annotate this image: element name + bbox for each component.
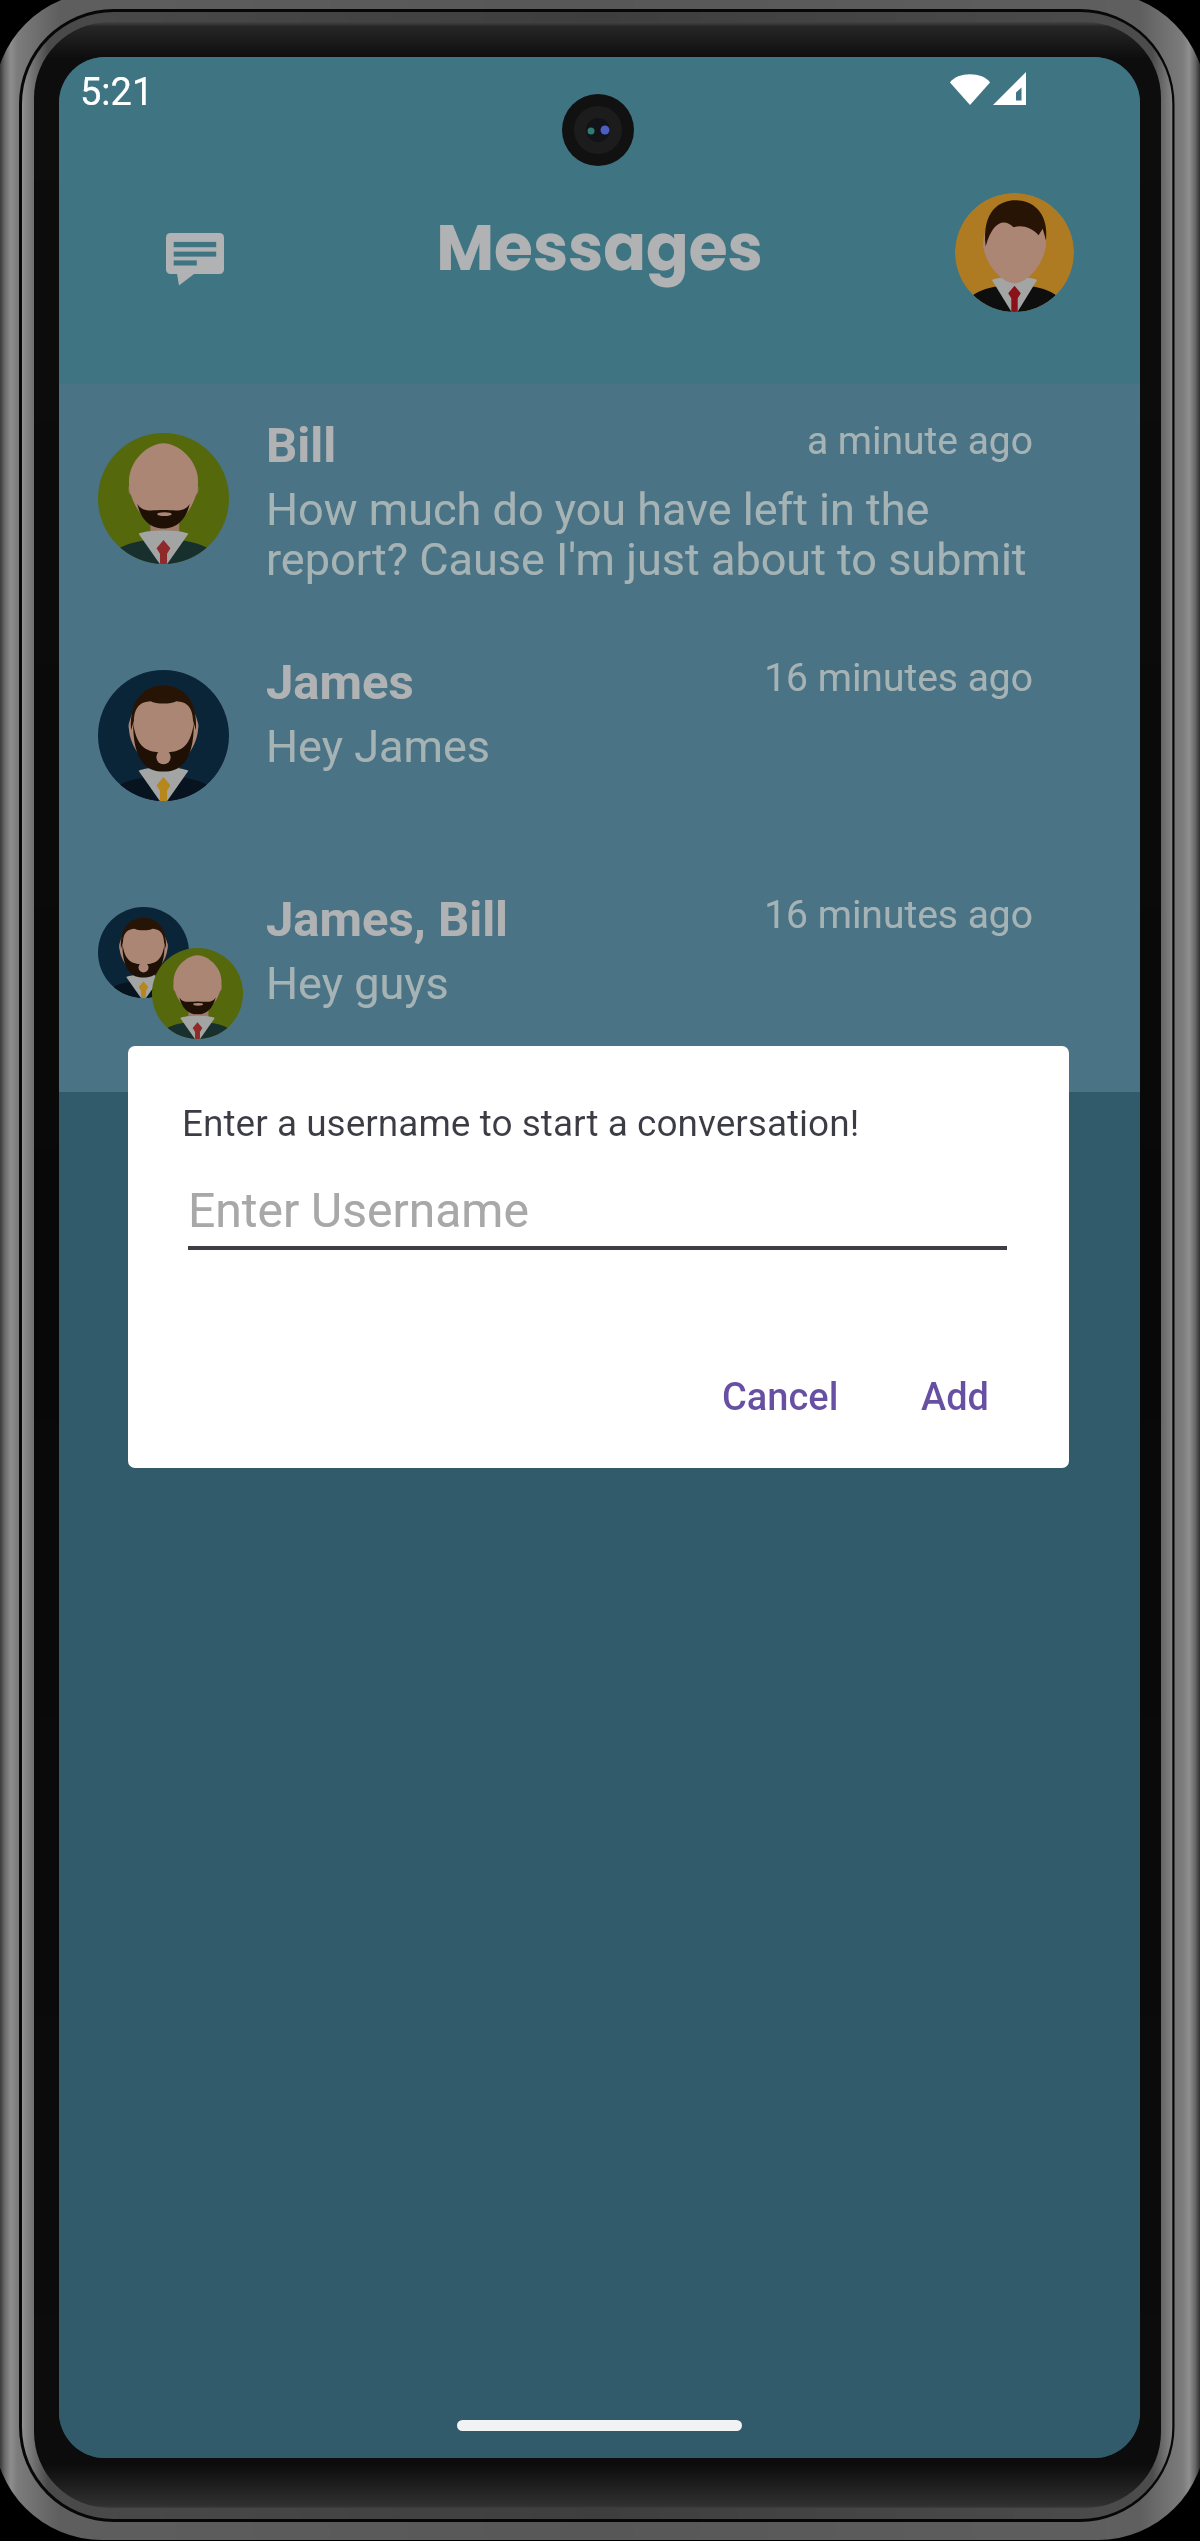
button[interactable]: Bill	[59, 384, 1140, 621]
staticText: Messages	[59, 204, 1140, 292]
staticText: 16 minutes ago	[59, 892, 1033, 938]
button[interactable]: Profile	[955, 193, 1074, 312]
staticText: Hey James	[266, 720, 490, 773]
staticText: James	[266, 654, 414, 711]
staticText: 5:21	[80, 70, 154, 115]
staticText: Enter a username to start a conversation…	[182, 1102, 860, 1145]
staticText: James, Bill	[266, 891, 509, 948]
button[interactable]: James, Bill	[59, 858, 1140, 1095]
staticText: a minute ago	[59, 418, 1033, 464]
staticText: Bill	[266, 417, 337, 474]
staticText: Hey guys	[266, 957, 449, 1010]
staticText: Cancel	[722, 1375, 839, 1420]
button[interactable]: Enter Username	[188, 1174, 1007, 1250]
staticText: 16 minutes ago	[59, 655, 1033, 701]
staticText: How much do you have left in the report?…	[266, 483, 1027, 586]
staticText: Enter Username	[188, 1182, 529, 1238]
staticText: Add	[921, 1375, 990, 1420]
button[interactable]: Add	[899, 1361, 1012, 1434]
button[interactable]: James	[59, 621, 1140, 858]
button[interactable]: Cancel	[700, 1361, 861, 1434]
button[interactable]: New message	[140, 204, 250, 314]
